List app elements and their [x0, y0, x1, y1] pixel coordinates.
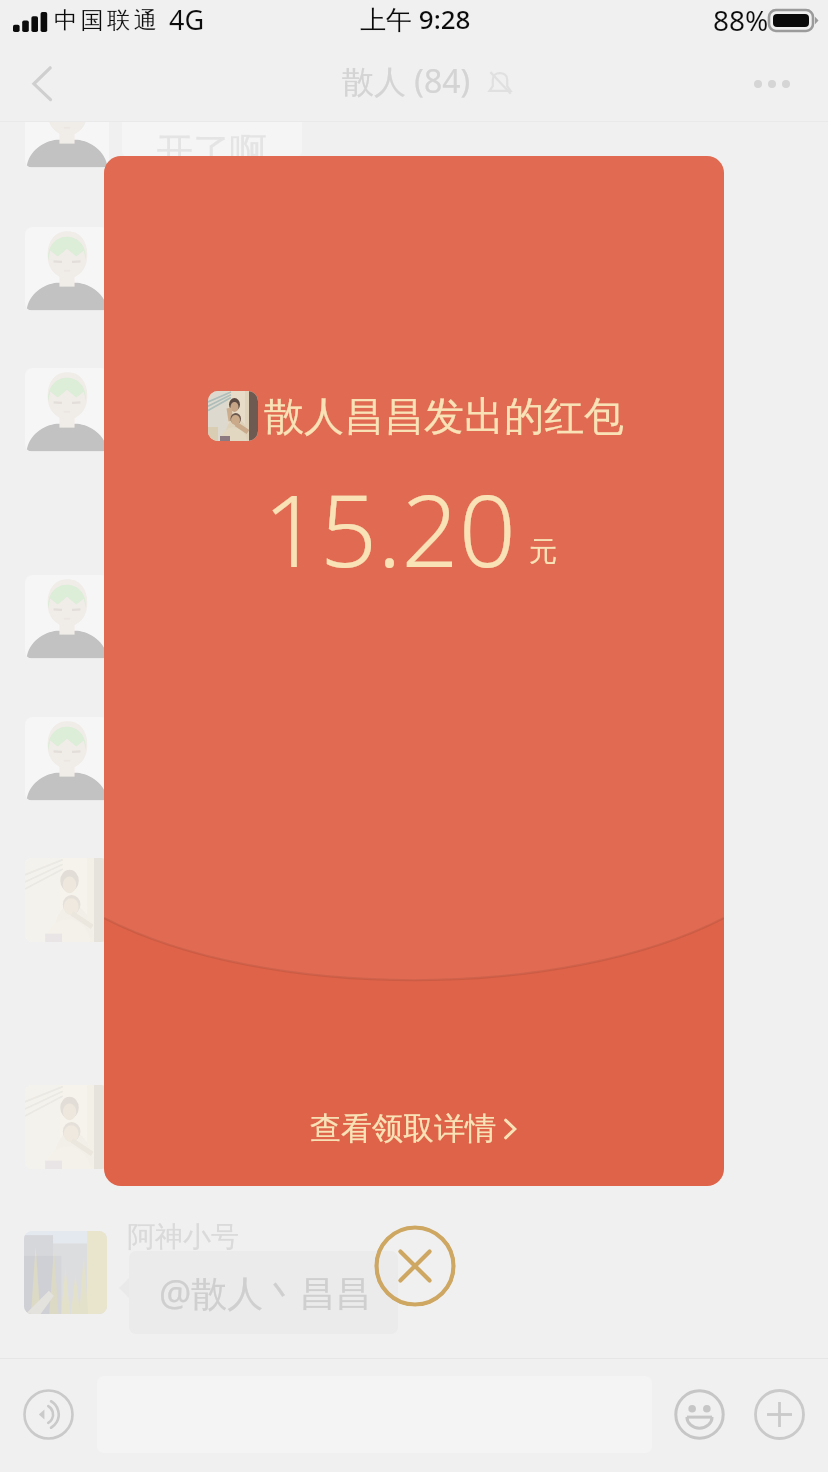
staticText: 散人 (84) — [342, 59, 471, 103]
button[interactable]: Emoji — [674, 1389, 725, 1440]
button[interactable]: Back — [14, 52, 70, 108]
staticText: 查看领取详情 — [310, 1109, 496, 1148]
button[interactable]: More — [737, 66, 807, 102]
staticText: @散人丶昌昌 — [159, 1268, 372, 1317]
staticText: 4G — [169, 1, 205, 38]
button[interactable]: 散人昌昌发出的红包 — [104, 156, 724, 1186]
staticText: 散人昌昌发出的红包 — [264, 391, 624, 441]
staticText: 上午 9:28 — [360, 1, 471, 37]
button[interactable]: Close — [374, 1225, 456, 1307]
staticText: 阿神小号 — [127, 1219, 239, 1254]
staticText: 88% — [713, 1, 769, 39]
staticText: 15.20 — [263, 460, 516, 596]
staticText: 元 — [529, 534, 557, 569]
button[interactable]: 查看领取详情 — [310, 1109, 519, 1148]
button[interactable]: Voice input — [23, 1389, 74, 1440]
staticText: 开了啊 — [156, 128, 267, 175]
button[interactable]: More options — [754, 1389, 805, 1440]
staticText: 中国联通 — [54, 6, 161, 35]
